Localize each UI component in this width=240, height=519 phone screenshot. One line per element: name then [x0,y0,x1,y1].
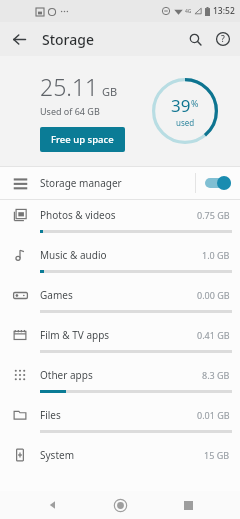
staticText: Photos & videos [40,208,197,222]
button[interactable]: Home [105,491,135,519]
staticText: Files [40,408,197,422]
button[interactable]: Film & TV apps [0,320,240,360]
staticText: Free up space [51,133,114,146]
button[interactable]: Photos & videos [0,200,240,240]
staticText: 25.11 [40,71,99,102]
button[interactable]: Music & audio [0,240,240,280]
staticText: 0.01 GB [197,409,230,421]
staticText: ? [221,33,225,45]
staticText: used [176,117,195,128]
staticText: Storage [42,30,94,49]
staticText: 0.41 GB [197,329,230,341]
staticText: System [40,448,204,462]
button[interactable]: System [0,440,240,477]
staticText: GB [102,84,118,99]
button[interactable]: Recent apps [173,491,203,519]
staticText: Other apps [40,368,202,382]
button[interactable]: Search [181,25,209,53]
button[interactable]: Free up space [40,127,125,152]
staticText: 15 GB [204,449,230,461]
button[interactable]: Files [0,400,240,440]
staticText: Games [40,288,197,302]
button[interactable]: Help [209,25,237,53]
staticText: Storage manager [40,176,195,190]
staticText: 1.0 GB [202,249,230,261]
staticText: 0.75 GB [197,209,230,221]
button[interactable]: Games [0,280,240,320]
button[interactable]: Storage manager toggle [196,167,240,199]
button[interactable]: Back [4,24,34,54]
button[interactable]: Other apps [0,360,240,400]
button[interactable]: Storage manager [0,167,240,199]
staticText: 13:52 [213,5,235,17]
staticText: 0.00 GB [197,289,230,301]
staticText: 39 [171,94,191,117]
staticText: Music & audio [40,248,202,262]
staticText: % [191,97,199,109]
staticText: 4G [185,8,192,15]
staticText: 8.3 GB [202,369,230,381]
button[interactable]: Back [38,491,68,519]
staticText: Used of 64 GB [40,105,100,117]
staticText: Film & TV apps [40,328,197,342]
